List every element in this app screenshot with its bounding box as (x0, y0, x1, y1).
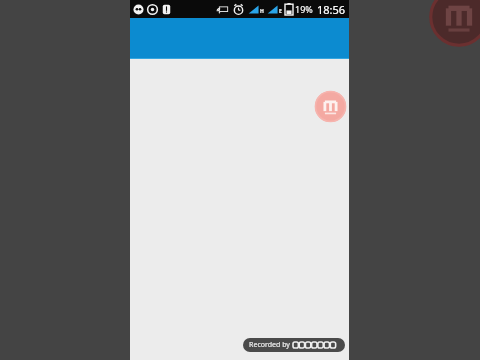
staticText: 18:56 (317, 2, 346, 17)
button[interactable]: Mobizen recorder (314, 90, 347, 123)
staticText: E (279, 8, 282, 15)
staticText: 19% (295, 3, 313, 15)
staticText: H (260, 8, 264, 15)
staticText: Recorded by (249, 340, 290, 350)
